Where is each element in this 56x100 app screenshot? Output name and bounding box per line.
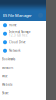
button[interactable]: Home	[0, 21, 46, 29]
button[interactable]: Wise	[0, 72, 46, 80]
button[interactable]: Bookmarks	[0, 55, 46, 63]
staticText: Internal Storage	[9, 30, 31, 34]
button[interactable]: Network	[0, 46, 46, 55]
staticText: Extractors	[2, 66, 13, 69]
staticText: Wise	[2, 74, 8, 78]
button[interactable]: Cloud Drive	[0, 38, 46, 46]
staticText: 12.3 GB free	[9, 34, 28, 37]
button[interactable]: Website	[0, 80, 46, 89]
staticText: Home	[9, 23, 17, 27]
staticText: ES File Manager	[3, 13, 32, 18]
staticText: Network	[9, 49, 20, 52]
staticText: Cloud Drive	[9, 40, 26, 44]
button[interactable]: Extractors	[0, 63, 46, 72]
staticText: Bookmarks	[2, 57, 15, 61]
staticText: Website	[2, 83, 13, 86]
button[interactable]: Internal Storage	[0, 29, 46, 38]
staticText: Share	[2, 91, 9, 95]
button[interactable]: Share	[0, 89, 46, 97]
button[interactable]: Account	[38, 13, 43, 18]
